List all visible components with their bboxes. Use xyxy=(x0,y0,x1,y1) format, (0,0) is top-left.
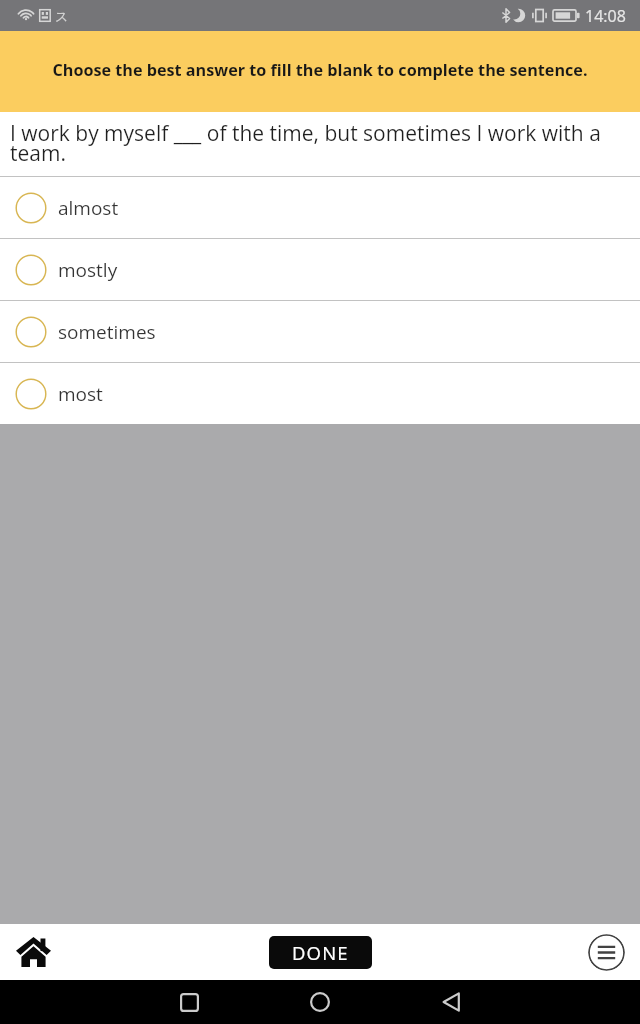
staticText: I work by myself ___ of the time, but so… xyxy=(10,119,637,167)
button[interactable]: Menu xyxy=(588,934,625,971)
button[interactable]: most xyxy=(0,363,640,424)
button[interactable]: Home xyxy=(10,929,56,975)
button[interactable]: Recents xyxy=(165,980,213,1024)
button[interactable]: Home xyxy=(296,980,344,1024)
staticText: 14:08 xyxy=(585,5,626,27)
button[interactable]: Back xyxy=(427,980,475,1024)
staticText: Choose the best answer to fill the blank… xyxy=(52,59,588,81)
button[interactable]: DONE xyxy=(269,936,372,969)
button[interactable]: sometimes xyxy=(0,301,640,362)
staticText: most xyxy=(58,381,103,407)
button[interactable]: mostly xyxy=(0,239,640,300)
staticText: almost xyxy=(58,195,119,221)
staticText: mostly xyxy=(58,257,118,283)
staticText: ス xyxy=(55,8,69,24)
button[interactable]: almost xyxy=(0,177,640,238)
staticText: DONE xyxy=(292,940,349,965)
staticText: sometimes xyxy=(58,319,156,345)
